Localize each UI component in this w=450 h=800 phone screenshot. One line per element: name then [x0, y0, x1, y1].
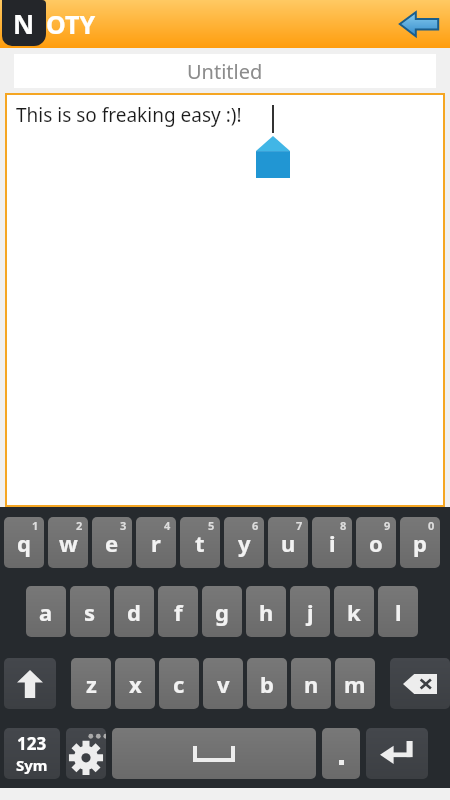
staticText: N	[13, 6, 35, 41]
staticText: b	[260, 669, 274, 699]
staticText: 1	[32, 518, 39, 533]
button[interactable]: c	[159, 658, 199, 709]
button[interactable]: l	[378, 586, 418, 637]
staticText: t	[195, 528, 205, 558]
button[interactable]: m	[335, 658, 375, 709]
staticText: o	[369, 528, 383, 558]
staticText: e	[105, 528, 119, 558]
staticText: s	[84, 597, 96, 627]
button[interactable]: v	[203, 658, 243, 709]
staticText: u	[281, 528, 296, 558]
staticText: 0	[428, 518, 435, 533]
staticText: 5	[208, 518, 215, 533]
staticText: v	[217, 669, 230, 699]
button[interactable]: k	[334, 586, 374, 637]
button[interactable]: Untitled	[14, 54, 436, 88]
staticText: 2	[76, 518, 83, 533]
button[interactable]: n	[291, 658, 331, 709]
staticText: g	[215, 597, 229, 627]
staticText: 7	[296, 518, 303, 533]
staticText: 8	[340, 518, 347, 533]
button[interactable]: z	[71, 658, 111, 709]
staticText: d	[127, 597, 141, 627]
button[interactable]: Enter	[366, 728, 428, 779]
button[interactable]: p	[400, 517, 440, 568]
staticText: i	[329, 528, 336, 558]
button[interactable]: Backspace	[390, 658, 450, 709]
button[interactable]: This is so freaking easy :)!	[16, 102, 444, 506]
button[interactable]: i	[312, 517, 352, 568]
button[interactable]: Shift	[4, 658, 56, 709]
staticText: p	[413, 528, 427, 558]
staticText: Sym	[16, 755, 48, 775]
button[interactable]: Settings	[66, 728, 106, 779]
staticText: 123	[17, 732, 47, 755]
button[interactable]: w	[48, 517, 88, 568]
button[interactable]: j	[290, 586, 330, 637]
staticText: m	[344, 669, 366, 699]
staticText: This is so freaking easy :)!	[16, 102, 242, 128]
staticText: 4	[164, 518, 171, 533]
staticText: x	[129, 669, 142, 699]
button[interactable]: r	[136, 517, 176, 568]
staticText: 3	[120, 518, 127, 533]
staticText: 9	[384, 518, 391, 533]
staticText: a	[39, 597, 53, 627]
button[interactable]: g	[202, 586, 242, 637]
button[interactable]: t	[180, 517, 220, 568]
button[interactable]: h	[246, 586, 286, 637]
staticText: c	[173, 669, 185, 699]
button[interactable]: Space	[112, 728, 316, 779]
button[interactable]: e	[92, 517, 132, 568]
button[interactable]: N	[2, 0, 46, 46]
staticText: q	[17, 528, 31, 558]
staticText: l	[395, 597, 402, 627]
staticText: z	[86, 669, 97, 699]
button[interactable]: b	[247, 658, 287, 709]
button[interactable]: q	[4, 517, 44, 568]
button[interactable]: s	[70, 586, 110, 637]
staticText: k	[347, 597, 361, 627]
staticText: y	[238, 528, 251, 558]
staticText: OTY	[46, 7, 96, 41]
staticText: w	[59, 528, 78, 558]
button[interactable]: a	[26, 586, 66, 637]
staticText: 6	[252, 518, 259, 533]
button[interactable]: Back	[396, 4, 442, 44]
staticText: r	[151, 528, 161, 558]
button[interactable]: x	[115, 658, 155, 709]
staticText: h	[259, 597, 274, 627]
staticText: n	[304, 669, 319, 699]
staticText: f	[174, 597, 183, 627]
button[interactable]: Period	[322, 728, 360, 779]
button[interactable]: u	[268, 517, 308, 568]
button[interactable]: y	[224, 517, 264, 568]
staticText: j	[307, 597, 314, 627]
button[interactable]: d	[114, 586, 154, 637]
button[interactable]: o	[356, 517, 396, 568]
button[interactable]: 123	[4, 728, 60, 779]
button[interactable]: f	[158, 586, 198, 637]
staticText: Untitled	[187, 58, 263, 85]
